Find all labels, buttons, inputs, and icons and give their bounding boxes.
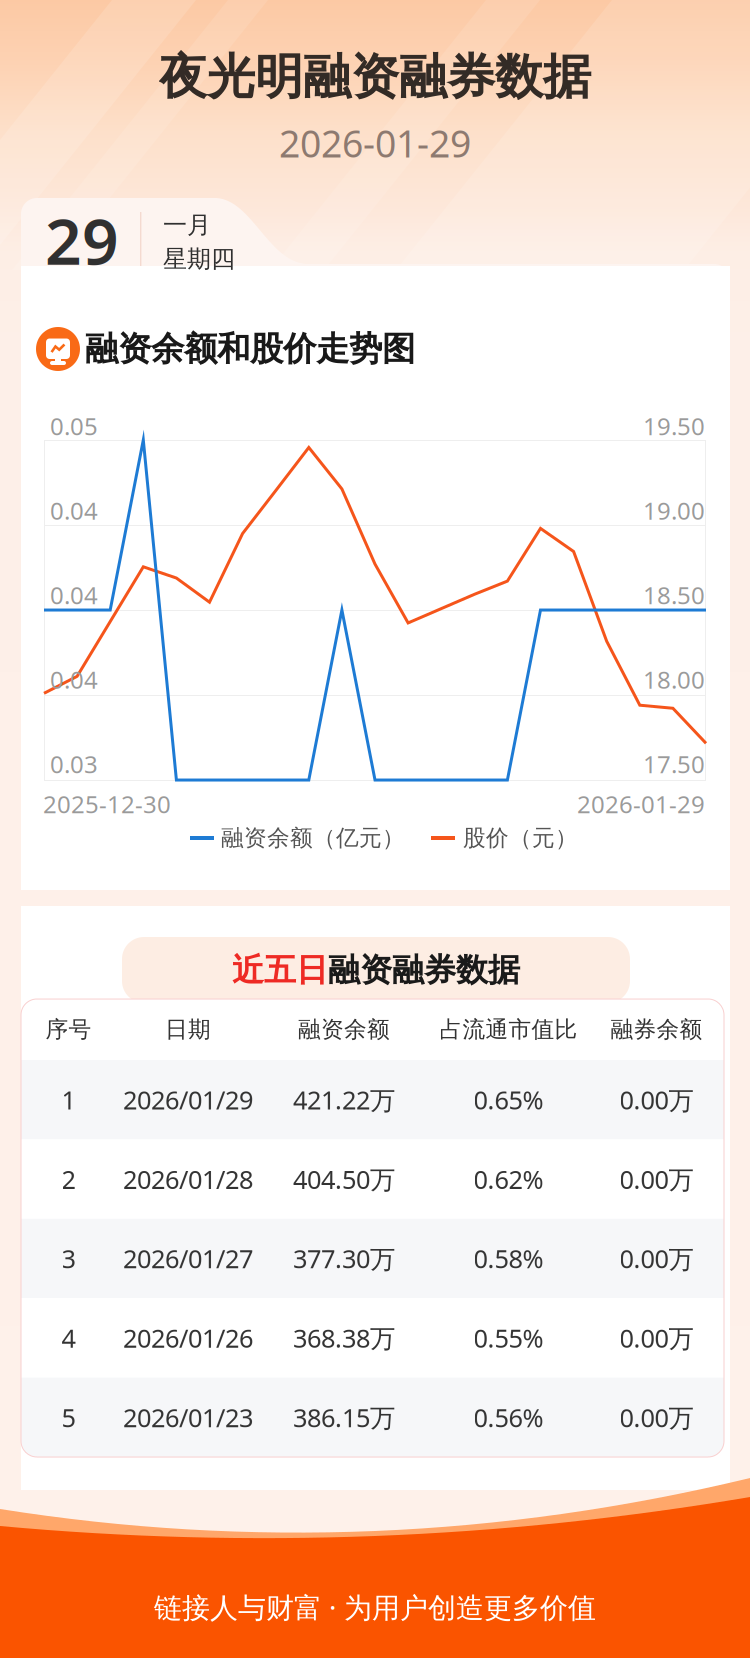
staticText: 近五日	[232, 950, 328, 990]
staticText: 0.03	[50, 748, 98, 780]
staticText: 0.04	[50, 495, 98, 526]
staticText: 日期	[165, 1016, 211, 1043]
staticText: 2026/01/26	[123, 1321, 253, 1355]
staticText: 0.55%	[473, 1321, 543, 1355]
staticText: 2026/01/28	[123, 1162, 253, 1196]
staticText: 0.65%	[473, 1083, 543, 1116]
staticText: 19.00	[643, 495, 705, 526]
staticText: 股价（元）	[463, 824, 578, 852]
staticText: 377.30万	[293, 1242, 395, 1275]
staticText: 融资融券数据	[328, 950, 520, 990]
staticText: 链接人与财富 · 为用户创造更多价值	[154, 1588, 596, 1626]
staticText: 2025-12-30	[43, 788, 171, 820]
staticText: 星期四	[163, 244, 235, 274]
staticText: 夜光明融资融券数据	[159, 47, 591, 106]
staticText: 2026-01-29	[279, 118, 471, 168]
staticText: 0.00万	[619, 1400, 693, 1434]
staticText: 融资余额	[298, 1016, 390, 1043]
staticText: 0.00万	[619, 1162, 693, 1196]
staticText: 368.38万	[293, 1321, 395, 1355]
staticText: 融券余额	[610, 1016, 702, 1043]
staticText: 2026/01/29	[123, 1083, 253, 1116]
staticText: 421.22万	[293, 1083, 395, 1116]
staticText: 0.04	[50, 664, 98, 695]
staticText: 18.00	[643, 664, 705, 695]
staticText: 0.00万	[619, 1083, 693, 1116]
staticText: 0.62%	[473, 1162, 543, 1196]
staticText: 一月	[163, 210, 211, 240]
staticText: 0.58%	[473, 1242, 543, 1275]
staticText: 404.50万	[293, 1162, 395, 1196]
staticText: 5	[61, 1400, 75, 1434]
staticText: 0.00万	[619, 1242, 693, 1275]
staticText: 4	[61, 1321, 75, 1355]
staticText: 386.15万	[293, 1400, 395, 1434]
staticText: 序号	[45, 1016, 91, 1043]
staticText: 0.00万	[619, 1321, 693, 1355]
staticText: 19.50	[643, 410, 705, 442]
staticText: 占流通市值比	[439, 1016, 577, 1043]
staticText: 1	[61, 1083, 75, 1116]
staticText: 2	[61, 1162, 75, 1196]
staticText: 2026-01-29	[577, 788, 705, 820]
staticText: 融资余额和股价走势图	[85, 328, 415, 369]
staticText: 0.04	[50, 579, 98, 611]
staticText: 2026/01/23	[123, 1400, 253, 1434]
staticText: 18.50	[643, 579, 705, 611]
staticText: 2026/01/27	[123, 1242, 253, 1275]
staticText: 29	[45, 197, 119, 282]
staticText: 0.56%	[473, 1400, 543, 1434]
staticText: 0.05	[50, 410, 98, 442]
staticText: 17.50	[643, 748, 705, 780]
staticText: 融资余额（亿元）	[221, 824, 405, 852]
staticText: 3	[61, 1242, 75, 1275]
